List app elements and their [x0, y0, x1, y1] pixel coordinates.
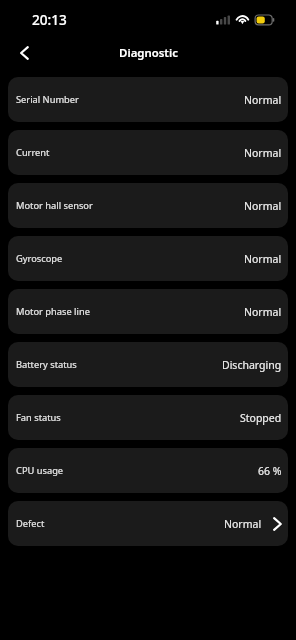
button[interactable]: Fan status [8, 395, 288, 440]
staticText: Defect [16, 517, 45, 530]
staticText: 66 % [258, 464, 282, 478]
button[interactable]: Battery status [8, 342, 288, 387]
staticText: Current [16, 146, 50, 159]
staticText: CPU usage [16, 464, 64, 477]
staticText: Normal [244, 146, 282, 160]
staticText: Normal [244, 199, 282, 213]
button[interactable]: Gyroscope [8, 236, 288, 281]
staticText: Fan status [16, 411, 61, 424]
staticText: Normal [244, 252, 282, 266]
staticText: Diagnostic [119, 45, 178, 61]
button[interactable]: Current [8, 130, 288, 175]
button[interactable]: Serial Number [8, 77, 288, 122]
staticText: Normal [244, 305, 282, 319]
staticText: Normal [224, 517, 262, 531]
staticText: Stopped [240, 411, 282, 425]
staticText: Gyroscope [16, 252, 63, 265]
button[interactable]: Motor hall sensor [8, 183, 288, 228]
staticText: Discharging [222, 358, 282, 372]
button[interactable]: Motor phase line [8, 289, 288, 334]
button[interactable]: Back [2, 34, 46, 71]
staticText: Battery status [16, 358, 77, 371]
button[interactable]: CPU usage [8, 448, 288, 493]
staticText: Serial Number [16, 93, 79, 106]
button[interactable]: Defect [8, 501, 288, 546]
staticText: Normal [244, 93, 282, 107]
staticText: Motor hall sensor [16, 199, 93, 212]
staticText: 20:13 [32, 10, 67, 29]
staticText: Motor phase line [16, 305, 90, 318]
